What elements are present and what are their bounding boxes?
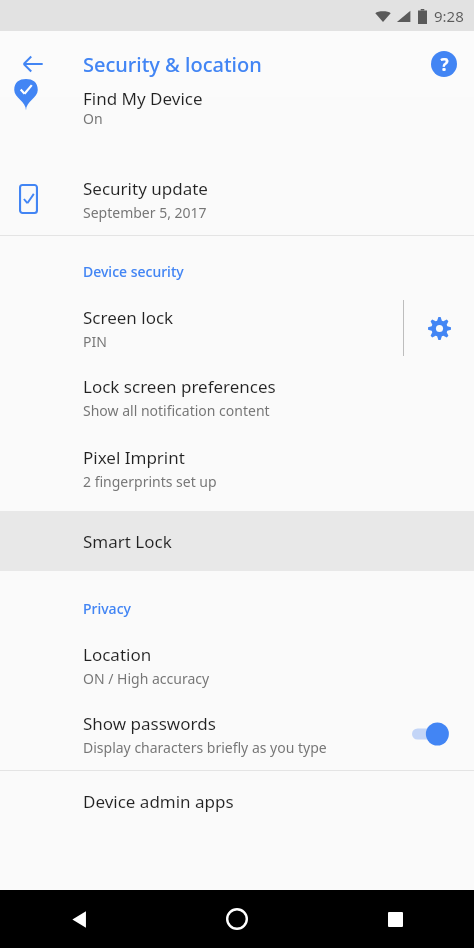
staticText: Location (83, 643, 152, 666)
button[interactable]: Screen lock (0, 295, 403, 361)
button[interactable]: Home (158, 890, 316, 948)
button[interactable]: Security update (0, 163, 474, 235)
staticText: Display characters briefly as you type (83, 738, 327, 757)
button[interactable]: Show passwords toggle (408, 707, 462, 761)
staticText: Lock screen preferences (83, 375, 276, 398)
staticText: ON / High accuracy (83, 669, 210, 688)
staticText: Show passwords (83, 712, 216, 735)
staticText: Security & location (83, 51, 262, 78)
staticText: Security update (83, 177, 208, 200)
button[interactable]: Lock screen preferences (0, 361, 474, 433)
staticText: Smart Lock (83, 530, 172, 553)
button[interactable]: Find My Device (0, 97, 474, 145)
staticText: Privacy (83, 599, 131, 618)
button[interactable]: Back (0, 890, 158, 948)
button[interactable]: Recent apps (316, 890, 474, 948)
staticText: PIN (83, 332, 107, 351)
button[interactable]: Location (0, 632, 474, 698)
staticText: Pixel Imprint (83, 446, 185, 469)
button[interactable]: Screen lock settings (404, 295, 474, 361)
staticText: On (83, 109, 103, 128)
staticText: September 5, 2017 (83, 203, 207, 222)
button[interactable]: Pixel Imprint (0, 433, 474, 503)
button[interactable]: Show passwords (0, 698, 474, 770)
staticText: ? (440, 53, 449, 76)
button[interactable]: Device admin apps (0, 771, 474, 831)
button[interactable]: Help (421, 41, 467, 87)
staticText: 9:28 (434, 6, 464, 26)
staticText: Show all notification content (83, 401, 270, 420)
staticText: Find My Device (83, 87, 203, 110)
button[interactable]: Back (9, 40, 57, 88)
staticText: Device admin apps (83, 790, 234, 813)
staticText: Screen lock (83, 306, 174, 329)
staticText: Device security (83, 262, 184, 281)
button[interactable]: Smart Lock (0, 511, 474, 571)
staticText: 2 fingerprints set up (83, 472, 217, 491)
